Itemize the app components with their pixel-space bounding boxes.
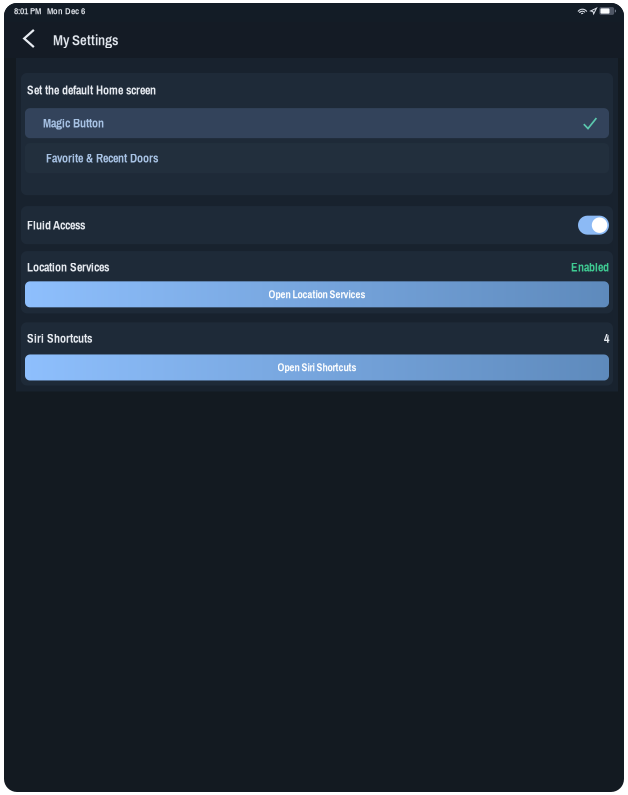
staticText: Mon Dec 6 [47,5,85,17]
staticText: My Settings [53,30,118,50]
button[interactable]: Magic Button [25,108,609,138]
button[interactable]: Open Siri Shortcuts [25,354,609,380]
staticText: Location Services [27,259,109,275]
staticText: Favorite & Recent Doors [46,150,158,166]
staticText: Open Siri Shortcuts [277,360,356,375]
button[interactable]: Favorite & Recent Doors [25,143,609,173]
staticText: Magic Button [43,115,104,131]
staticText: Open Location Services [268,287,365,301]
button[interactable]: Fluid Access [578,216,609,235]
staticText: 4 [604,330,609,346]
button[interactable]: Back [9,23,49,56]
staticText: Enabled [571,259,609,275]
staticText: Siri Shortcuts [27,330,92,346]
staticText: Fluid Access [27,217,85,233]
staticText: Set the default Home screen [27,82,156,98]
button[interactable]: Open Location Services [25,281,609,307]
staticText: 8:01 PM [14,5,41,17]
